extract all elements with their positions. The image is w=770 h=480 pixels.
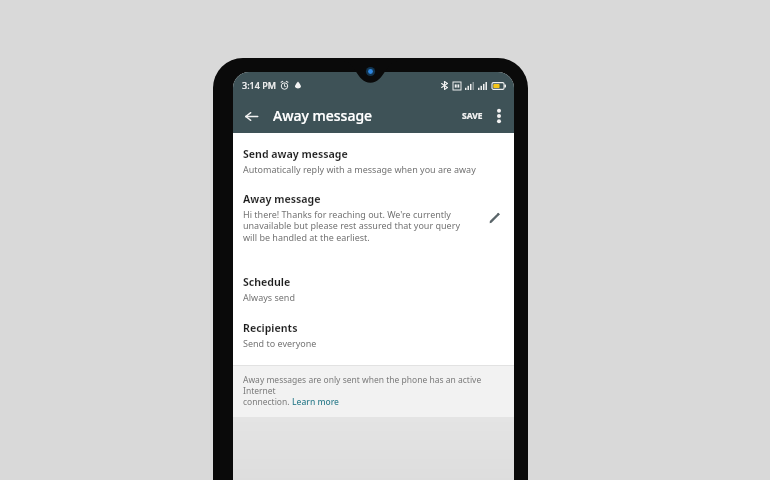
button[interactable]: More options	[487, 104, 511, 128]
staticText: Learn more	[292, 396, 339, 408]
staticText: 3:14 PM	[242, 79, 276, 91]
staticText: Always send	[243, 291, 295, 303]
staticText: Automatically reply with a message when …	[243, 163, 476, 175]
staticText: Schedule	[243, 275, 291, 289]
staticText: Recipients	[243, 321, 298, 335]
staticText: SAVE	[462, 110, 483, 122]
staticText: Send to everyone	[243, 337, 317, 349]
button[interactable]: Learn more	[292, 396, 339, 408]
staticText: Away message	[273, 106, 373, 125]
button[interactable]: Recipients	[233, 321, 514, 349]
staticText: Away message	[243, 192, 321, 206]
button[interactable]: Send away message	[233, 147, 514, 175]
staticText: Hi there! Thanks for reaching out. We're…	[243, 208, 474, 244]
staticText: Send away message	[243, 147, 348, 161]
button[interactable]: Edit away message	[482, 206, 506, 230]
button[interactable]: SAVE	[459, 106, 486, 126]
staticText: connection.	[243, 396, 292, 408]
staticText: Away messages are only sent when the pho…	[243, 374, 500, 396]
button[interactable]: Schedule	[233, 275, 514, 303]
button[interactable]: Back	[238, 103, 264, 129]
button[interactable]: Away message	[233, 192, 514, 244]
